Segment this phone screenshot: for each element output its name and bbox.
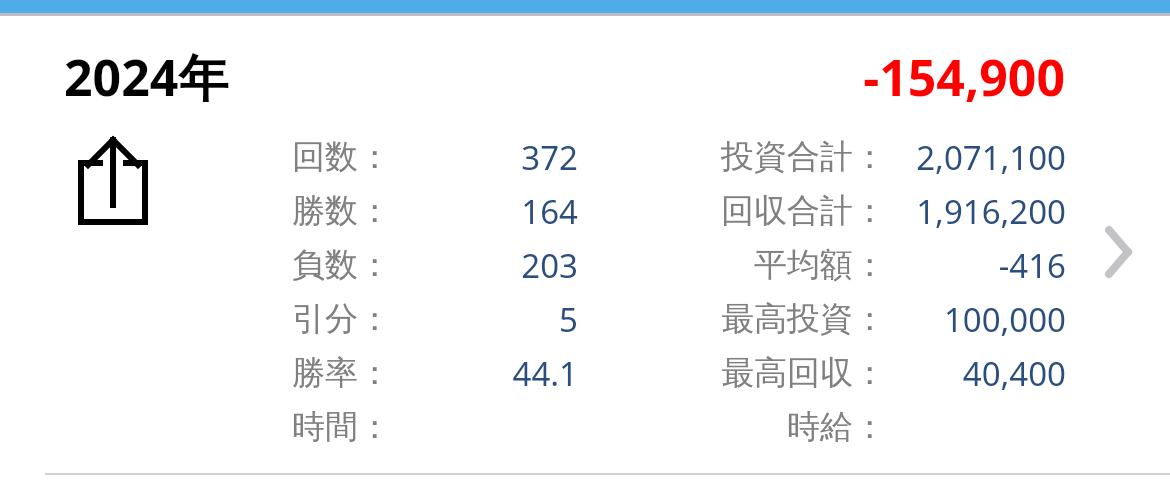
staticText: 平均額： (656, 244, 886, 286)
staticText: 時間： (292, 406, 392, 448)
staticText: -416 (826, 243, 1066, 288)
staticText: 5 (398, 297, 578, 342)
staticText: 引分： (292, 298, 392, 340)
staticText: 40,400 (826, 351, 1066, 396)
staticText: 勝率： (292, 352, 392, 394)
staticText: 1,916,200 (826, 189, 1066, 234)
staticText: 164 (398, 189, 578, 234)
staticText: 投資合計： (656, 136, 886, 178)
staticText: 最高回収： (656, 352, 886, 394)
staticText: 372 (398, 135, 578, 180)
staticText: 2024年 (64, 43, 229, 105)
staticText: 回数： (292, 136, 392, 178)
staticText: 勝数： (292, 190, 392, 232)
button[interactable]: Share (66, 126, 160, 236)
staticText: -154,900 (863, 43, 1065, 105)
staticText: 2,071,100 (826, 135, 1066, 180)
staticText: 最高投資： (656, 298, 886, 340)
staticText: 負数： (292, 244, 392, 286)
staticText: 回収合計： (656, 190, 886, 232)
staticText: 時給： (656, 406, 886, 448)
staticText: 203 (398, 243, 578, 288)
staticText: 100,000 (826, 297, 1066, 342)
button[interactable]: Next (1088, 212, 1148, 272)
staticText (826, 405, 1066, 450)
staticText: 44.1 (398, 351, 578, 396)
